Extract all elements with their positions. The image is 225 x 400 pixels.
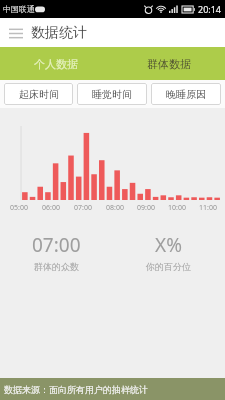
staticText: 起床时间	[19, 88, 59, 101]
button[interactable]: 个人数据	[0, 47, 112, 80]
staticText: 个人数据	[34, 57, 78, 71]
button[interactable]: X%	[112, 232, 225, 272]
button[interactable]: 07:00	[0, 232, 112, 272]
staticText: 05:00	[10, 203, 28, 213]
staticText: 数据统计	[31, 24, 87, 42]
button[interactable]: Menu	[5, 22, 27, 44]
staticText: 20:14	[198, 3, 222, 15]
button[interactable]: 晚睡原因	[151, 83, 221, 105]
staticText: 群体数据	[147, 57, 191, 71]
staticText: 11:00	[199, 203, 217, 213]
button[interactable]: 起床时间	[4, 83, 73, 105]
staticText: 你的百分位	[146, 261, 191, 272]
staticText: X%	[155, 232, 182, 258]
staticText: 10:00	[168, 203, 186, 213]
staticText: 07:00	[32, 232, 81, 258]
staticText: 群体的众数	[34, 261, 79, 272]
staticText: 08:00	[106, 203, 124, 213]
staticText: 晚睡原因	[166, 88, 206, 101]
button[interactable]: 睡觉时间	[77, 83, 147, 105]
button[interactable]: 群体数据	[112, 47, 225, 80]
staticText: 09:00	[137, 203, 155, 213]
staticText: 中国联通	[3, 4, 35, 14]
staticText: 睡觉时间	[92, 88, 132, 101]
staticText: 数据来源：面向所有用户的抽样统计	[4, 384, 148, 395]
staticText: 06:00	[42, 203, 60, 213]
staticText: 07:00	[74, 203, 92, 213]
